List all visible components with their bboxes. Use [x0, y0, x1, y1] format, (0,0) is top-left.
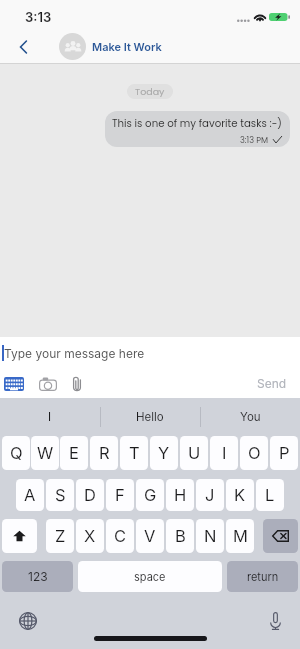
staticText: P [279, 443, 290, 463]
staticText: B [175, 526, 186, 546]
staticText: This is one of my favorite tasks :-) [112, 116, 282, 130]
button[interactable]: Z [46, 519, 74, 553]
button[interactable]: This is one of my favorite tasks :-) [105, 111, 290, 147]
button[interactable]: B [166, 519, 194, 553]
button[interactable]: Hello [100, 398, 200, 436]
button[interactable]: E [60, 436, 88, 470]
staticText: Z [55, 526, 66, 546]
staticText: I [48, 410, 52, 424]
button[interactable]: M [226, 519, 254, 553]
staticText: S [55, 485, 66, 505]
staticText: X [84, 526, 96, 546]
staticText: H [174, 485, 187, 505]
staticText: Y [158, 443, 170, 463]
button[interactable]: R [90, 436, 118, 470]
staticText: 123 [28, 569, 48, 584]
button[interactable]: Back [8, 32, 38, 62]
staticText: Make It Work [92, 40, 162, 53]
button[interactable]: X [76, 519, 104, 553]
button[interactable]: I [210, 436, 238, 470]
staticText: U [188, 443, 201, 463]
button[interactable]: N [196, 519, 224, 553]
button[interactable]: C [106, 519, 134, 553]
staticText: F [115, 485, 125, 505]
staticText: Hello [136, 410, 164, 424]
button[interactable]: O [240, 436, 268, 470]
button[interactable]: W [31, 436, 59, 470]
staticText: A [24, 485, 36, 505]
staticText: C [114, 526, 127, 546]
button[interactable]: U [180, 436, 208, 470]
button[interactable]: I [0, 398, 100, 436]
staticText: You [240, 410, 261, 424]
button[interactable]: G [136, 479, 164, 511]
button[interactable]: Dictate [260, 606, 290, 636]
button[interactable]: 123 [2, 561, 73, 592]
staticText: N [204, 526, 217, 546]
staticText: 3:13 [25, 9, 52, 25]
button[interactable]: H [166, 479, 194, 511]
staticText: M [233, 526, 248, 546]
staticText: return [247, 570, 279, 583]
button[interactable]: return [227, 561, 298, 592]
button[interactable]: F [106, 479, 134, 511]
staticText: D [84, 485, 96, 505]
staticText: R [99, 443, 110, 463]
staticText: space [134, 570, 166, 583]
button[interactable]: Change keyboard language [13, 606, 43, 636]
staticText: T [129, 443, 140, 463]
staticText: G [144, 485, 157, 505]
staticText: I [222, 443, 227, 463]
button[interactable]: S [46, 479, 74, 511]
staticText: Today [135, 85, 165, 98]
staticText: V [144, 526, 156, 546]
staticText: E [69, 443, 79, 463]
button[interactable]: A [16, 479, 44, 511]
button[interactable]: J [196, 479, 224, 511]
button[interactable]: Attach file [66, 369, 88, 398]
staticText: L [265, 485, 275, 505]
staticText: Send [257, 376, 287, 391]
button[interactable]: Backspace [263, 519, 298, 553]
staticText: O [248, 443, 261, 463]
staticText: 3:13 PM [240, 134, 268, 145]
button[interactable]: Camera [36, 369, 60, 398]
button[interactable]: Q [2, 436, 30, 470]
button[interactable]: P [270, 436, 298, 470]
button[interactable]: Y [150, 436, 178, 470]
button[interactable]: D [76, 479, 104, 511]
staticText: Q [10, 443, 23, 463]
button[interactable]: T [120, 436, 148, 470]
button[interactable]: You [200, 398, 300, 436]
button[interactable]: space [78, 561, 222, 592]
button[interactable]: V [136, 519, 164, 553]
button[interactable]: K [226, 479, 254, 511]
button[interactable]: L [256, 479, 284, 511]
staticText: K [234, 485, 246, 505]
button[interactable]: Shift [2, 519, 37, 553]
button[interactable]: Make It Work [59, 32, 162, 60]
staticText: Type your message here [4, 346, 145, 361]
button[interactable]: Send [244, 371, 300, 396]
staticText: J [205, 485, 215, 505]
staticText: W [37, 443, 54, 463]
button[interactable]: Keyboard [1, 369, 27, 398]
